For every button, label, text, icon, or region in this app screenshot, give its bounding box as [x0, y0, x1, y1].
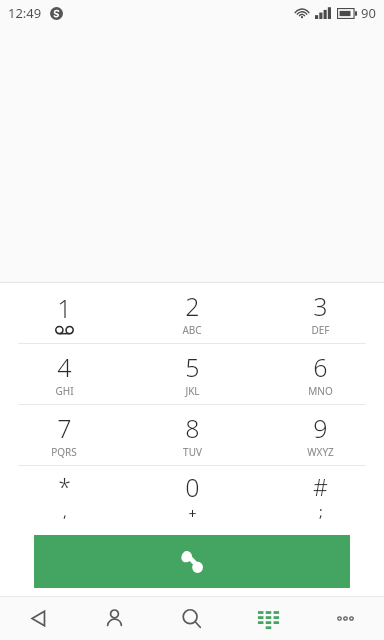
staticText: 5	[185, 350, 200, 384]
staticText: ABC	[182, 323, 202, 337]
button[interactable]: 3	[256, 283, 384, 343]
button[interactable]: 6	[256, 344, 384, 404]
button[interactable]: Contacts	[76, 596, 153, 640]
staticText: 90	[361, 4, 376, 22]
staticText: *	[58, 471, 71, 502]
staticText: 1	[57, 291, 72, 325]
button[interactable]: 0	[128, 466, 256, 526]
button[interactable]: 5	[128, 344, 256, 404]
button[interactable]: 4	[0, 344, 128, 404]
staticText: 12:49	[8, 4, 42, 22]
staticText: +	[188, 504, 197, 523]
button[interactable]: *	[0, 466, 128, 526]
staticText: JKL	[185, 384, 200, 398]
staticText: 6	[313, 350, 328, 384]
staticText: 7	[57, 411, 72, 445]
button[interactable]: 9	[256, 405, 384, 465]
button[interactable]: 2	[128, 283, 256, 343]
staticText: ,	[63, 502, 67, 521]
staticText: WXYZ	[307, 445, 334, 459]
button[interactable]: #	[256, 466, 384, 526]
button[interactable]: 1	[0, 283, 128, 343]
staticText: MNO	[308, 384, 333, 398]
staticText: 2	[185, 289, 200, 323]
staticText: 0	[185, 470, 200, 504]
button[interactable]: Back	[0, 596, 76, 640]
staticText: #	[313, 471, 328, 502]
staticText: PQRS	[51, 445, 77, 459]
staticText: DEF	[311, 323, 330, 337]
staticText: 3	[313, 289, 328, 323]
staticText: GHI	[55, 384, 74, 398]
staticText: TUV	[183, 445, 202, 459]
staticText: 9	[313, 411, 328, 445]
button[interactable]: 8	[128, 405, 256, 465]
staticText: 4	[57, 350, 72, 384]
button[interactable]: Search	[153, 596, 230, 640]
button[interactable]: Dialpad	[230, 596, 307, 640]
staticText: 8	[185, 411, 200, 445]
button[interactable]: More options	[307, 596, 384, 640]
staticText: ;	[319, 502, 323, 521]
button[interactable]: Call	[34, 535, 350, 588]
button[interactable]: 7	[0, 405, 128, 465]
